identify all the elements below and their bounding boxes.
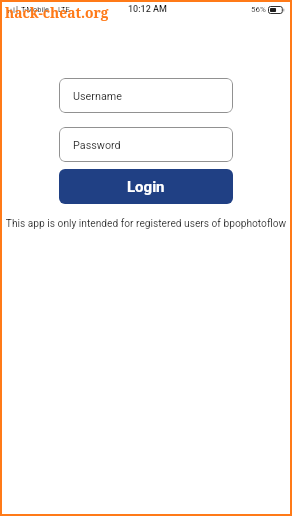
button[interactable]: Username — [59, 78, 233, 113]
staticText: Login — [127, 178, 165, 196]
staticText: 56% — [251, 5, 266, 14]
staticText: This app is only intended for registered… — [2, 218, 290, 230]
staticText: Password — [73, 139, 121, 152]
staticText: 10:12 AM — [128, 4, 167, 15]
button[interactable]: Password — [59, 127, 233, 162]
staticText: Username — [73, 90, 122, 103]
staticText: T-Mobile — [21, 5, 49, 14]
button[interactable]: Login — [59, 169, 233, 204]
staticText: LTE — [58, 5, 70, 14]
staticText: hack-cheat.org — [5, 3, 109, 22]
